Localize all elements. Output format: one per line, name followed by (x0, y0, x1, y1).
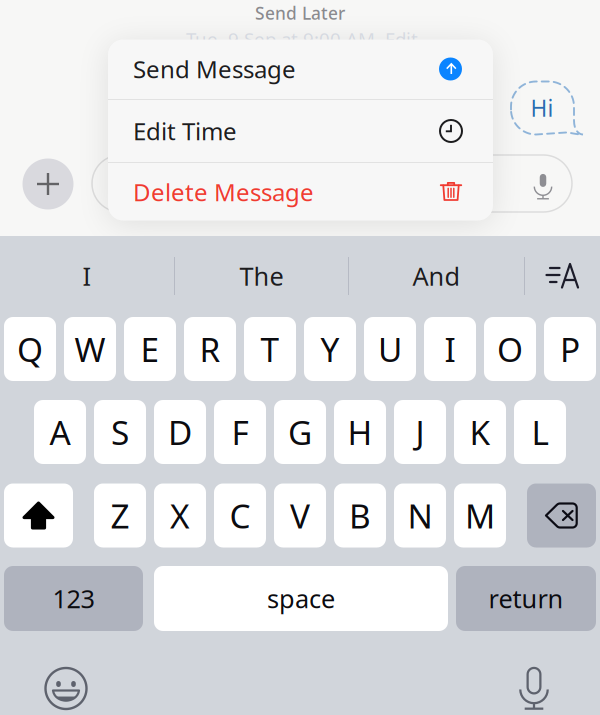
button[interactable]: J (394, 400, 446, 464)
button[interactable]: Q (4, 317, 56, 381)
button[interactable]: C (214, 483, 266, 547)
button[interactable]: T (244, 317, 296, 381)
button[interactable]: V (274, 483, 326, 547)
button[interactable]: F (214, 400, 266, 464)
button[interactable]: The (175, 254, 348, 298)
button[interactable]: X (154, 483, 206, 547)
staticText: D (168, 410, 192, 454)
staticText: return (488, 582, 563, 615)
button[interactable]: Delete Message (108, 163, 493, 221)
staticText: Delete Message (133, 176, 314, 208)
staticText: L (531, 410, 548, 454)
staticText: space (267, 582, 335, 615)
staticText: C (229, 493, 250, 538)
staticText: O (497, 327, 523, 371)
button[interactable]: 123 (4, 566, 143, 631)
button[interactable]: Z (94, 483, 146, 547)
button[interactable]: Delete (527, 483, 596, 547)
staticText: I (444, 327, 455, 371)
button[interactable]: Edit Time (108, 100, 493, 162)
button[interactable]: A (34, 400, 86, 464)
staticText: W (74, 327, 105, 371)
button[interactable]: U (364, 317, 416, 381)
staticText: Send Later (255, 1, 345, 24)
staticText: J (415, 410, 424, 454)
staticText: F (231, 410, 248, 454)
staticText: Y (320, 327, 339, 371)
staticText: H (347, 410, 372, 454)
staticText: U (378, 327, 402, 371)
staticText: V (290, 493, 310, 538)
staticText: B (349, 493, 371, 538)
button[interactable]: Emoji keyboard (36, 658, 96, 715)
staticText: N (407, 493, 432, 538)
button[interactable]: G (274, 400, 326, 464)
staticText: Q (17, 327, 43, 371)
staticText: T (260, 327, 279, 371)
button[interactable]: I (424, 317, 476, 381)
button[interactable]: D (154, 400, 206, 464)
staticText: M (465, 493, 495, 538)
button[interactable]: M (454, 483, 506, 547)
button[interactable]: P (544, 317, 596, 381)
button[interactable]: Add attachment (22, 158, 73, 209)
button[interactable]: return (456, 566, 596, 631)
button[interactable]: Text formatting (525, 251, 600, 301)
staticText: E (140, 327, 159, 371)
button[interactable]: I (0, 254, 174, 298)
staticText: Z (110, 493, 129, 538)
staticText: Edit Time (133, 115, 237, 147)
staticText: A (49, 410, 70, 454)
staticText: X (170, 493, 190, 538)
button[interactable]: space (154, 566, 448, 631)
button[interactable]: Send Message (108, 39, 493, 99)
staticText: And (412, 259, 460, 293)
button[interactable]: W (64, 317, 116, 381)
button[interactable]: Record audio message (521, 164, 565, 208)
button[interactable]: L (514, 400, 566, 464)
button[interactable]: Shift (4, 483, 73, 547)
staticText: R (199, 327, 220, 371)
staticText: S (111, 410, 129, 454)
button[interactable]: O (484, 317, 536, 381)
staticText: Send Message (133, 53, 296, 85)
button[interactable]: K (454, 400, 506, 464)
staticText: The (239, 259, 283, 293)
button[interactable]: R (184, 317, 236, 381)
button[interactable]: N (394, 483, 446, 547)
button[interactable]: S (94, 400, 146, 464)
staticText: Tue, 9 Sep at 9:00 AM Edit (186, 27, 418, 51)
staticText: G (288, 410, 312, 454)
button[interactable]: H (334, 400, 386, 464)
button[interactable]: Y (304, 317, 356, 381)
button[interactable]: And (349, 254, 524, 298)
staticText: K (469, 410, 490, 454)
button[interactable]: B (334, 483, 386, 547)
staticText: I (82, 259, 91, 293)
staticText: Hi (530, 93, 553, 123)
staticText: 123 (52, 582, 94, 615)
staticText: P (560, 327, 580, 371)
button[interactable]: Dictation (504, 658, 564, 715)
button[interactable]: E (124, 317, 176, 381)
